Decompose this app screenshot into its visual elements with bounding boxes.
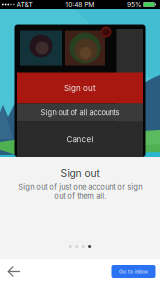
staticText: Cancel [66, 134, 93, 144]
staticText: AT&T [17, 0, 33, 9]
button[interactable]: Back [2, 259, 26, 284]
staticText: Sign out [64, 83, 96, 93]
button[interactable]: Go to inbox [111, 265, 155, 278]
button[interactable]: Sign out [17, 72, 143, 103]
staticText: 95% [127, 0, 142, 9]
staticText: Go to inbox [119, 268, 148, 275]
button[interactable]: Cancel [17, 121, 143, 157]
staticText: 10:48 PM [65, 0, 94, 9]
staticText: Sign out of just one account or sign out… [18, 182, 142, 201]
button[interactable]: Sign out of all accounts [17, 103, 143, 121]
staticText: Sign out [60, 167, 99, 179]
staticText: Sign out of all accounts [40, 108, 119, 117]
